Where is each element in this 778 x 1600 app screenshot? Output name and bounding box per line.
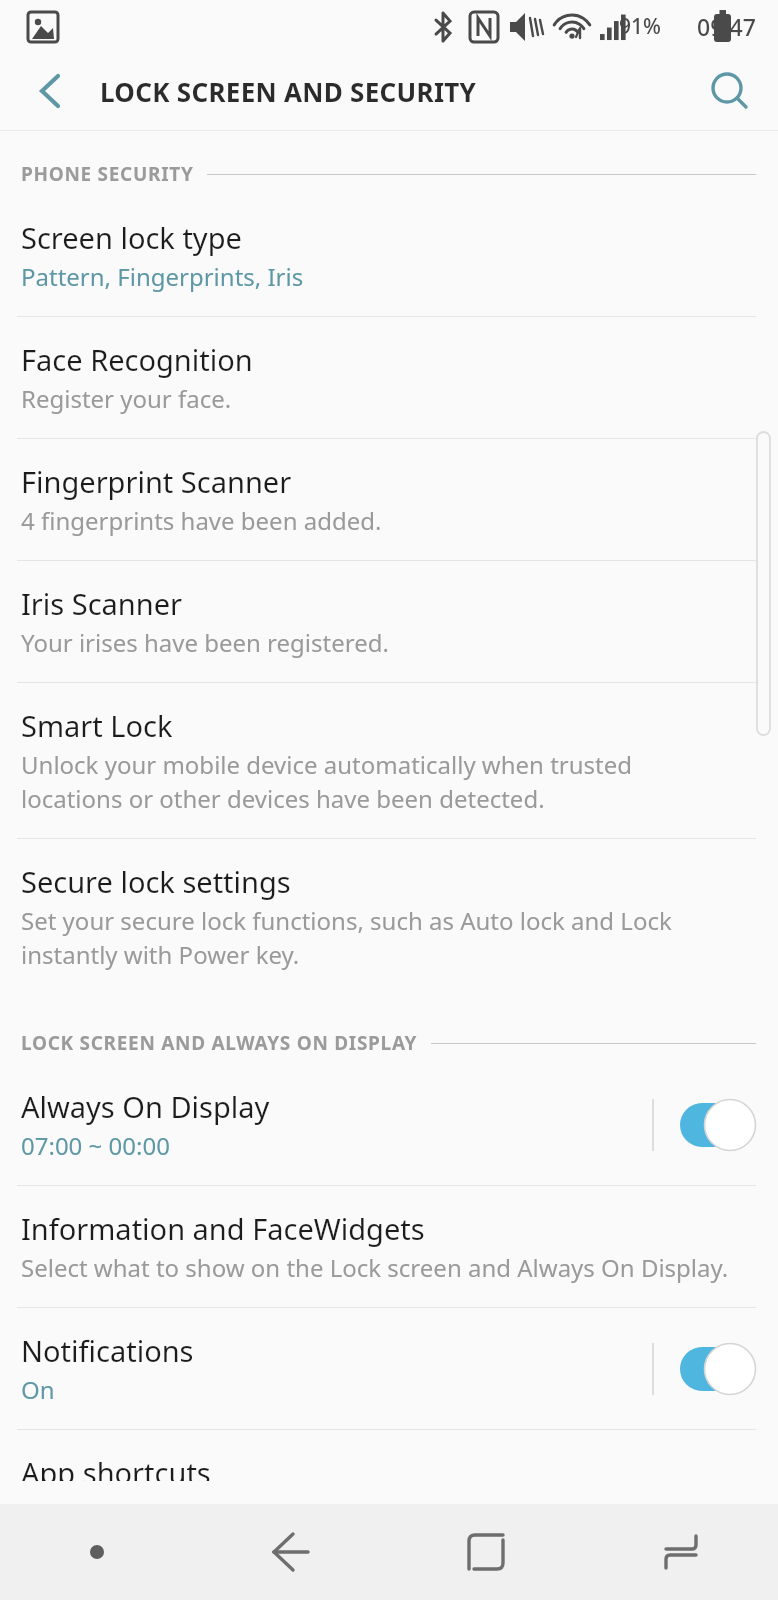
staticText: Register your face. <box>21 382 232 415</box>
staticText: PHONE SECURITY <box>21 161 194 187</box>
button[interactable]: Recents <box>583 1504 778 1600</box>
staticText: On <box>21 1373 55 1406</box>
staticText: Your irises have been registered. <box>21 626 389 659</box>
button[interactable]: Search <box>682 52 778 130</box>
staticText: 4 fingerprints have been added. <box>21 504 382 537</box>
button[interactable]: Toggle Notifications <box>676 1340 756 1398</box>
staticText: Set your secure lock functions, such as … <box>21 904 672 971</box>
button[interactable]: Iris Scanner <box>0 561 778 682</box>
staticText: Face Recognition <box>21 340 253 379</box>
staticText: Select what to show on the Lock screen a… <box>21 1251 729 1284</box>
button[interactable]: Back <box>194 1504 388 1600</box>
button[interactable]: Face Recognition <box>0 317 778 438</box>
staticText: 09:47 <box>697 11 756 42</box>
button[interactable]: App shortcuts <box>0 1430 778 1504</box>
staticText: 07:00 ~ 00:00 <box>21 1129 170 1162</box>
button[interactable]: Notifications <box>0 1308 778 1429</box>
staticText: Pattern, Fingerprints, Iris <box>21 260 304 293</box>
button[interactable]: Screen lock type <box>0 195 778 316</box>
staticText: Iris Scanner <box>21 584 183 623</box>
staticText: LOCK SCREEN AND ALWAYS ON DISPLAY <box>21 1030 418 1056</box>
staticText: App shortcuts <box>21 1453 211 1481</box>
staticText: Screen lock type <box>21 218 242 257</box>
button[interactable]: Information and FaceWidgets <box>0 1186 778 1307</box>
staticText: Notifications <box>21 1331 194 1370</box>
button[interactable]: Secure lock settings <box>0 839 778 994</box>
staticText: Always On Display <box>21 1087 270 1126</box>
staticText: Secure lock settings <box>21 862 291 901</box>
staticText: LOCK SCREEN AND SECURITY <box>100 74 477 109</box>
staticText: 91% <box>619 12 661 41</box>
staticText: Unlock your mobile device automatically … <box>21 748 633 815</box>
button[interactable]: Back <box>0 52 100 130</box>
staticText: Smart Lock <box>21 706 173 745</box>
staticText: Information and FaceWidgets <box>21 1209 425 1248</box>
button[interactable]: Fingerprint Scanner <box>0 439 778 560</box>
staticText: Fingerprint Scanner <box>21 462 292 501</box>
button[interactable]: Smart Lock <box>0 683 778 838</box>
button[interactable]: Home <box>388 1504 583 1600</box>
button[interactable]: Toggle Always On Display <box>676 1096 756 1154</box>
button[interactable]: Always On Display <box>0 1064 778 1185</box>
